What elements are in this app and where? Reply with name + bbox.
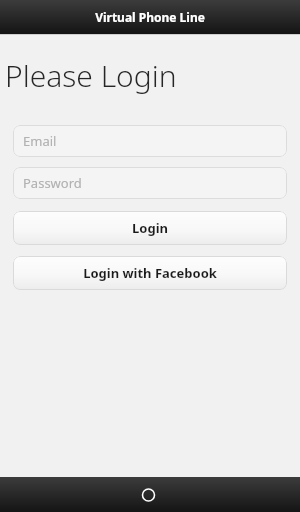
staticText: Login with Facebook [83, 264, 217, 282]
button[interactable]: Password [13, 167, 287, 199]
button[interactable]: Login with Facebook [13, 256, 287, 290]
staticText: Please Login [5, 55, 177, 96]
staticText: Login [132, 219, 168, 237]
staticText: Virtual Phone Line [95, 9, 205, 25]
button[interactable]: Login [13, 211, 287, 245]
staticText: Password [23, 174, 82, 192]
button[interactable]: Email [13, 125, 287, 157]
staticText: Email [23, 132, 57, 150]
